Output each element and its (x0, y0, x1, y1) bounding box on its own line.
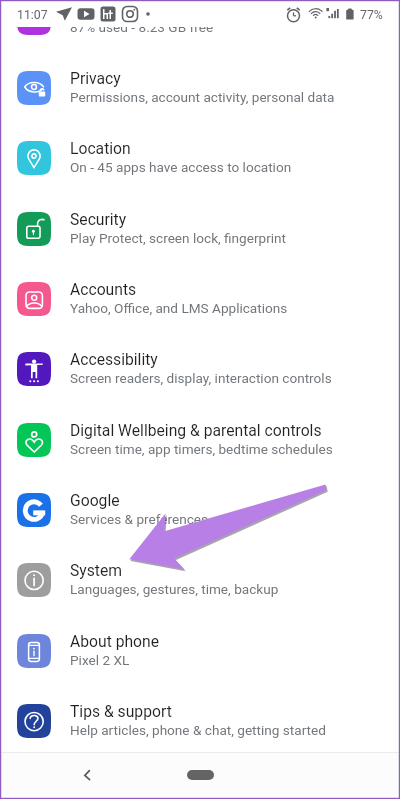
button[interactable]: Security (0, 194, 400, 264)
staticText: Google (70, 491, 120, 509)
button[interactable]: Back (74, 761, 102, 789)
staticText: Yahoo, Office, and LMS Applications (70, 300, 288, 316)
staticText: Pixel 2 XL (70, 652, 130, 668)
staticText: Screen readers, display, interaction con… (70, 370, 332, 386)
button[interactable]: Accounts (0, 264, 400, 334)
staticText: Accessibility (70, 350, 158, 368)
staticText: Services & preferences (70, 511, 209, 527)
staticText: Screen time, app timers, bedtime schedul… (70, 441, 333, 457)
staticText: Digital Wellbeing & parental controls (70, 421, 322, 439)
button[interactable]: Home (187, 770, 214, 780)
button[interactable]: Tips & support (0, 686, 400, 756)
staticText: Languages, gestures, time, backup (70, 581, 279, 597)
button[interactable]: Digital Wellbeing & parental controls (0, 405, 400, 475)
button[interactable]: Accessibility (0, 334, 400, 404)
staticText: About phone (70, 632, 160, 650)
staticText: Location (70, 139, 131, 157)
staticText: 87% used - 8.23 GB free (70, 19, 214, 35)
button[interactable]: Privacy (0, 53, 400, 123)
staticText: 11:07 (17, 8, 48, 22)
staticText: On - 45 apps have access to location (70, 159, 292, 175)
staticText: System (70, 561, 123, 579)
staticText: Accounts (70, 280, 137, 298)
staticText: Security (70, 210, 127, 228)
button[interactable]: System (0, 545, 400, 615)
staticText: 77% (360, 8, 383, 22)
staticText: Play Protect, screen lock, fingerprint (70, 230, 287, 246)
staticText: Permissions, account activity, personal … (70, 89, 335, 105)
staticText: Tips & support (70, 702, 172, 720)
staticText: Storage (70, 0, 124, 17)
button[interactable]: Location (0, 123, 400, 193)
staticText: Help articles, phone & chat, getting sta… (70, 722, 326, 738)
button[interactable]: Google (0, 475, 400, 545)
button[interactable]: About phone (0, 616, 400, 686)
staticText: Privacy (70, 69, 121, 87)
